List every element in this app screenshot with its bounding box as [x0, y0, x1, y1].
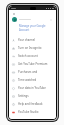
button[interactable]: Switch account: [9, 52, 56, 60]
button[interactable]: Help and feedback: [9, 100, 56, 108]
button[interactable]: Settings: [9, 92, 56, 100]
button[interactable]: Get YouTube Premium: [9, 60, 56, 68]
staticText: YouTube Studio: [18, 110, 39, 114]
staticText: Time watched: [18, 78, 37, 82]
button[interactable]: YouTube Studio: [9, 108, 56, 116]
button[interactable]: More options: [49, 18, 53, 22]
button[interactable]: Account avatar: [12, 17, 17, 22]
button[interactable]: Your channel: [9, 36, 56, 44]
staticText: Settings: [18, 94, 29, 98]
staticText: Get YouTube Premium: [18, 62, 48, 66]
staticText: Help and feedback: [18, 102, 43, 106]
button[interactable]: Turn on Incognito: [9, 44, 56, 52]
staticText: Switch account: [18, 54, 38, 58]
staticText: Turn on Incognito: [18, 46, 42, 50]
staticText: Your data in YouTube: [18, 86, 46, 90]
button[interactable]: Close: [12, 12, 16, 16]
button[interactable]: Manage your Google Account: [19, 24, 53, 32]
button[interactable]: Purchases and memberships: [9, 68, 56, 76]
button[interactable]: Time watched: [9, 76, 56, 84]
staticText: Your channel: [18, 38, 36, 42]
staticText: Purchases and memberships: [18, 70, 53, 74]
button[interactable]: Your data in YouTube: [9, 84, 56, 92]
staticText: Manage your Google Account: [19, 24, 53, 32]
